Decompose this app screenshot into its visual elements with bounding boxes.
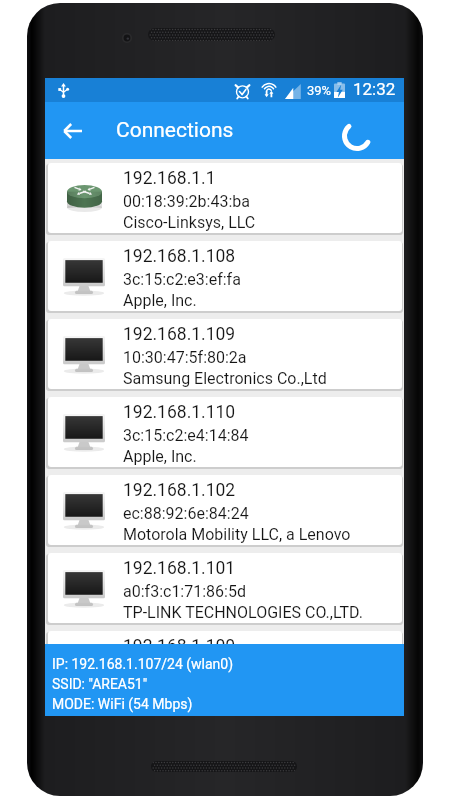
button[interactable]: 192.168.1.100 bbox=[48, 631, 402, 644]
staticText: 192.168.1.109 bbox=[123, 324, 236, 345]
button[interactable]: 192.168.1.110 bbox=[48, 397, 402, 467]
staticText: 192.168.1.1 bbox=[123, 168, 216, 189]
staticText: 00:18:39:2b:43:ba bbox=[123, 192, 250, 211]
staticText: SSID: "AREA51" bbox=[52, 676, 148, 692]
staticText: 192.168.1.108 bbox=[123, 246, 236, 267]
staticText: TP-LINK TECHNOLOGIES CO.,LTD. bbox=[123, 603, 363, 622]
staticText: 192.168.1.102 bbox=[123, 480, 236, 501]
button[interactable]: Back bbox=[49, 107, 97, 155]
button[interactable]: 192.168.1.102 bbox=[48, 475, 402, 545]
button[interactable]: 192.168.1.108 bbox=[48, 241, 402, 311]
staticText: Connections bbox=[116, 118, 234, 143]
staticText: 192.168.1.101 bbox=[123, 558, 236, 579]
staticText: IP: 192.168.1.107/24 (wlan0) bbox=[52, 656, 234, 672]
button[interactable]: 192.168.1.109 bbox=[48, 319, 402, 389]
staticText: 10:30:47:5f:80:2a bbox=[123, 348, 247, 367]
staticText: Motorola Mobility LLC, a Lenovo bbox=[123, 525, 351, 544]
staticText: Apple, Inc. bbox=[123, 447, 197, 466]
staticText: 192.168.1.100 bbox=[123, 636, 236, 644]
button[interactable]: 192.168.1.1 bbox=[48, 163, 402, 233]
button[interactable]: 192.168.1.101 bbox=[48, 553, 402, 623]
staticText: 39% bbox=[307, 83, 332, 98]
staticText: 192.168.1.110 bbox=[123, 402, 236, 423]
staticText: MODE: WiFi (54 Mbps) bbox=[52, 696, 193, 712]
staticText: Cisco-Linksys, LLC bbox=[123, 213, 256, 232]
staticText: 3c:15:c2:e4:14:84 bbox=[123, 426, 249, 445]
staticText: Apple, Inc. bbox=[123, 291, 197, 310]
staticText: a0:f3:c1:71:86:5d bbox=[123, 582, 246, 601]
button[interactable]: Scanning bbox=[336, 115, 378, 157]
staticText: ec:88:92:6e:84:24 bbox=[123, 504, 249, 523]
staticText: Samsung Electronics Co.,Ltd bbox=[123, 369, 327, 388]
staticText: 3c:15:c2:e3:ef:fa bbox=[123, 270, 241, 289]
staticText: 12:32 bbox=[353, 79, 396, 99]
